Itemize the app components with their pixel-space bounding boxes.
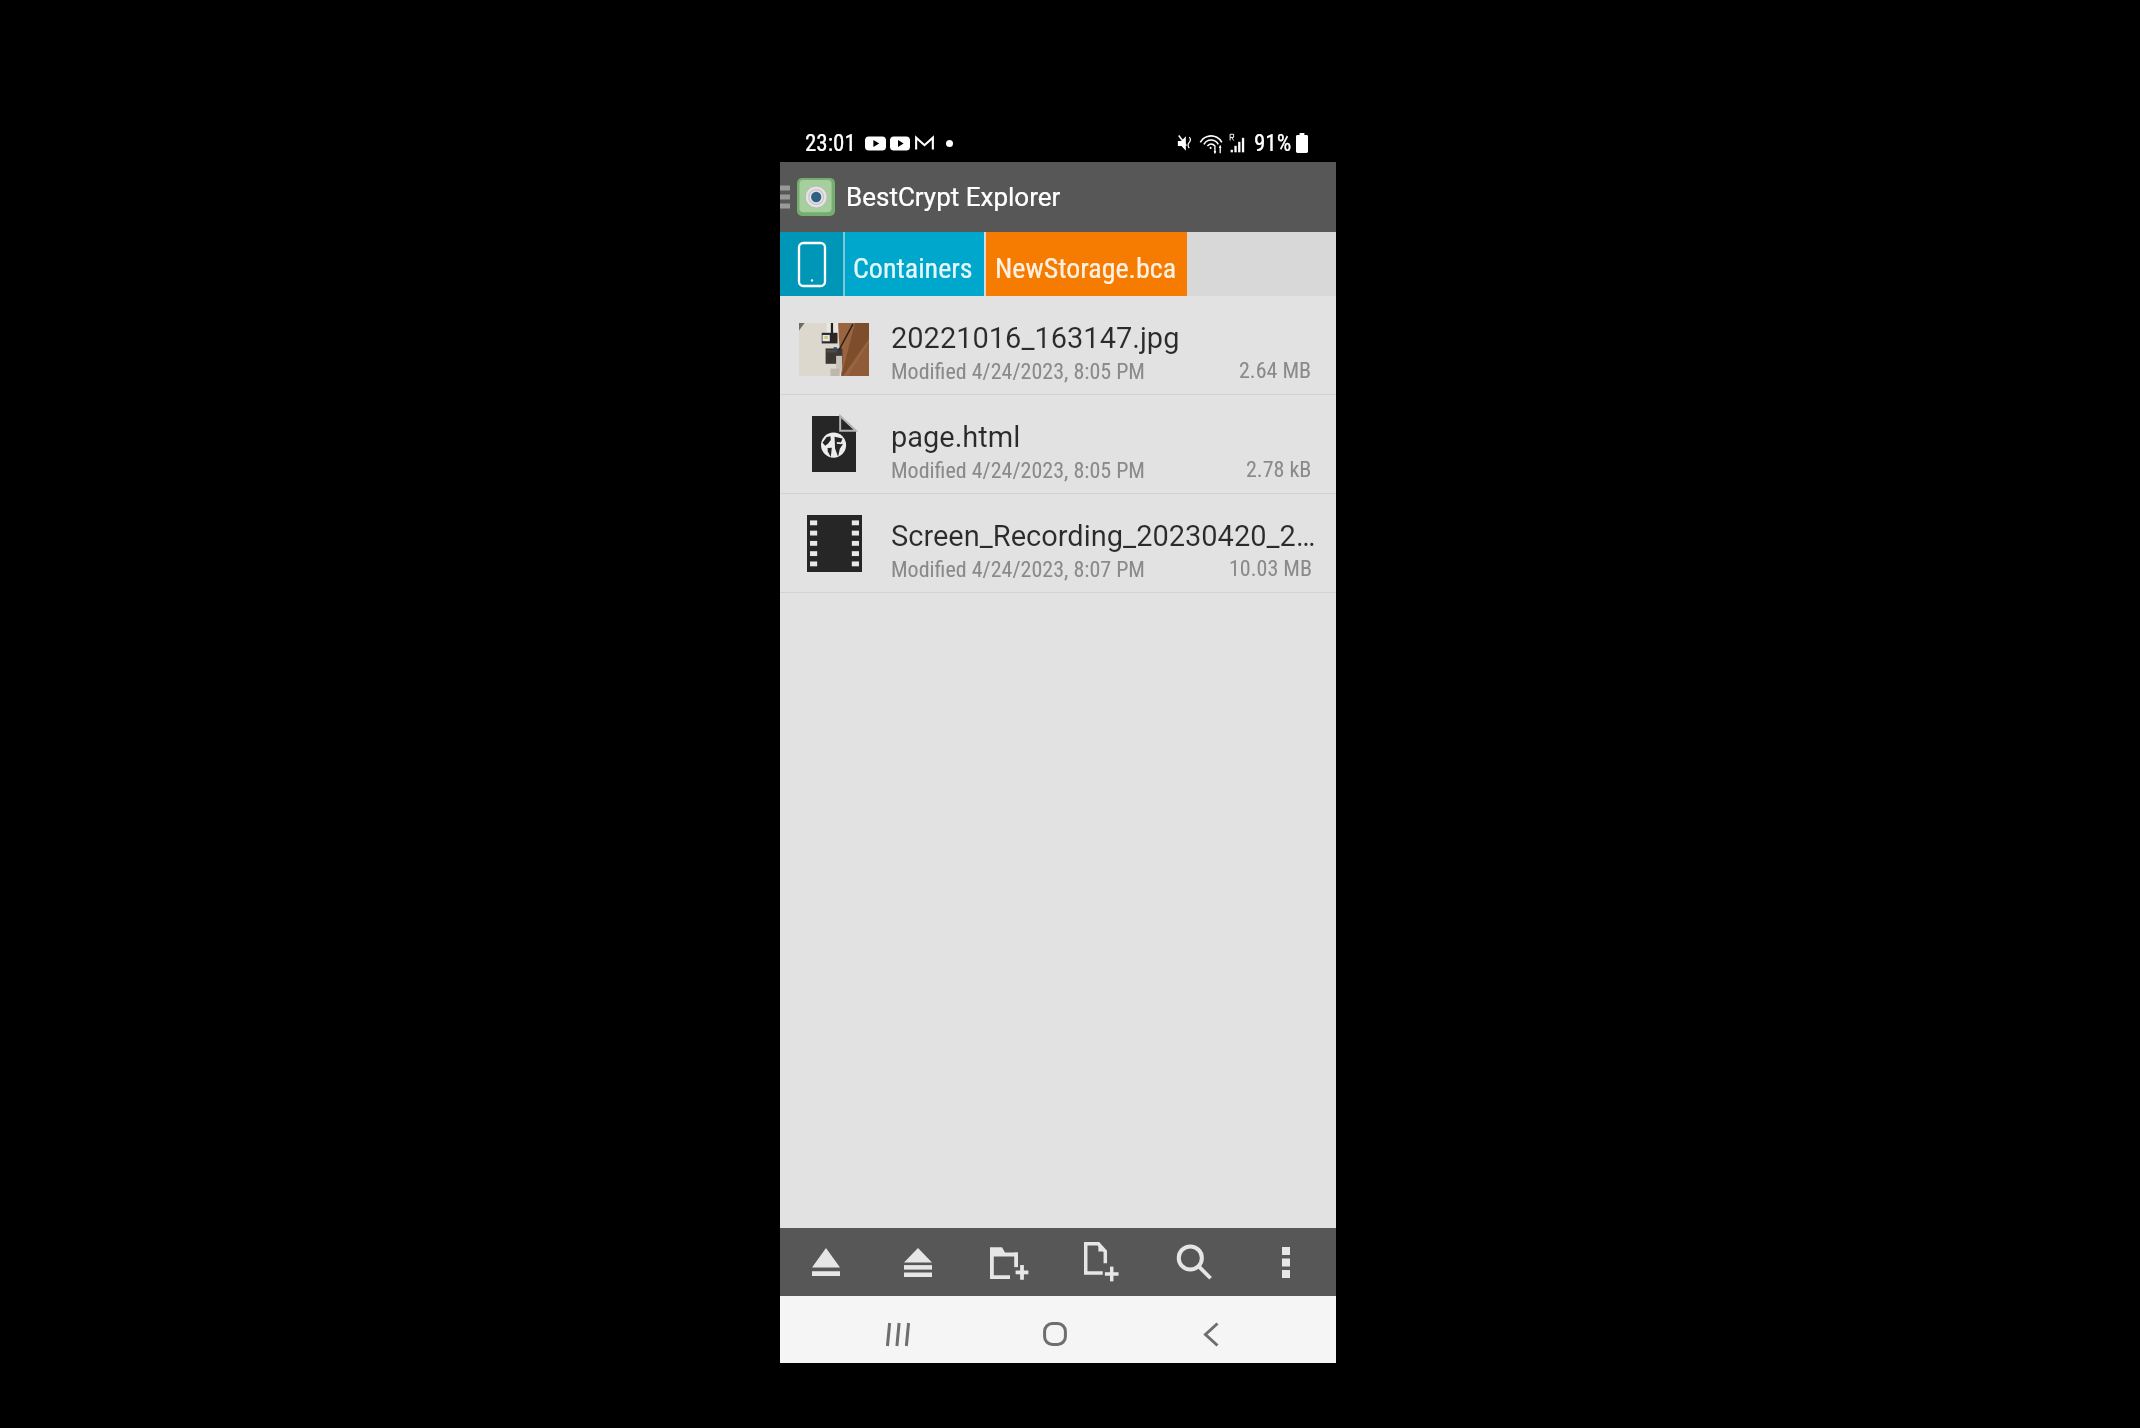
staticText: Modified 4/24/2023, 8:05 PM bbox=[891, 359, 1145, 385]
staticText: 2.78 kB bbox=[1246, 457, 1312, 483]
button[interactable]: Recent apps bbox=[819, 1305, 976, 1363]
staticText: 91% bbox=[1254, 130, 1292, 157]
button[interactable]: 20221016_163147.jpg bbox=[780, 296, 1336, 395]
staticText: Screen_Recording_20230420_2… bbox=[891, 519, 1316, 553]
staticText: Modified 4/24/2023, 8:05 PM bbox=[891, 458, 1145, 484]
staticText: 10.03 MB bbox=[1229, 556, 1312, 582]
button[interactable]: Containers bbox=[845, 232, 984, 296]
button[interactable]: Back bbox=[1133, 1305, 1290, 1363]
button[interactable]: Screen_Recording_20230420_2… bbox=[780, 494, 1336, 593]
staticText: BestCrypt Explorer bbox=[846, 182, 1061, 212]
button[interactable]: New folder bbox=[964, 1228, 1056, 1296]
staticText: page.html bbox=[891, 420, 1021, 454]
button[interactable]: Eject bbox=[780, 1228, 872, 1296]
staticText: Containers bbox=[853, 252, 973, 285]
button[interactable]: New file bbox=[1056, 1228, 1148, 1296]
button[interactable]: More options bbox=[1240, 1228, 1332, 1296]
staticText: Modified 4/24/2023, 8:07 PM bbox=[891, 557, 1145, 583]
button[interactable]: This device bbox=[780, 232, 843, 296]
staticText: NewStorage.bca bbox=[995, 252, 1177, 285]
staticText: 2.64 MB bbox=[1239, 358, 1312, 384]
staticText: 20221016_163147.jpg bbox=[891, 321, 1180, 355]
button[interactable]: page.html bbox=[780, 395, 1336, 494]
button[interactable]: NewStorage.bca bbox=[986, 232, 1187, 296]
button[interactable]: Unmount bbox=[872, 1228, 964, 1296]
staticText: 23:01 bbox=[805, 130, 856, 157]
button[interactable]: Home bbox=[976, 1305, 1133, 1363]
button[interactable]: Search bbox=[1148, 1228, 1240, 1296]
